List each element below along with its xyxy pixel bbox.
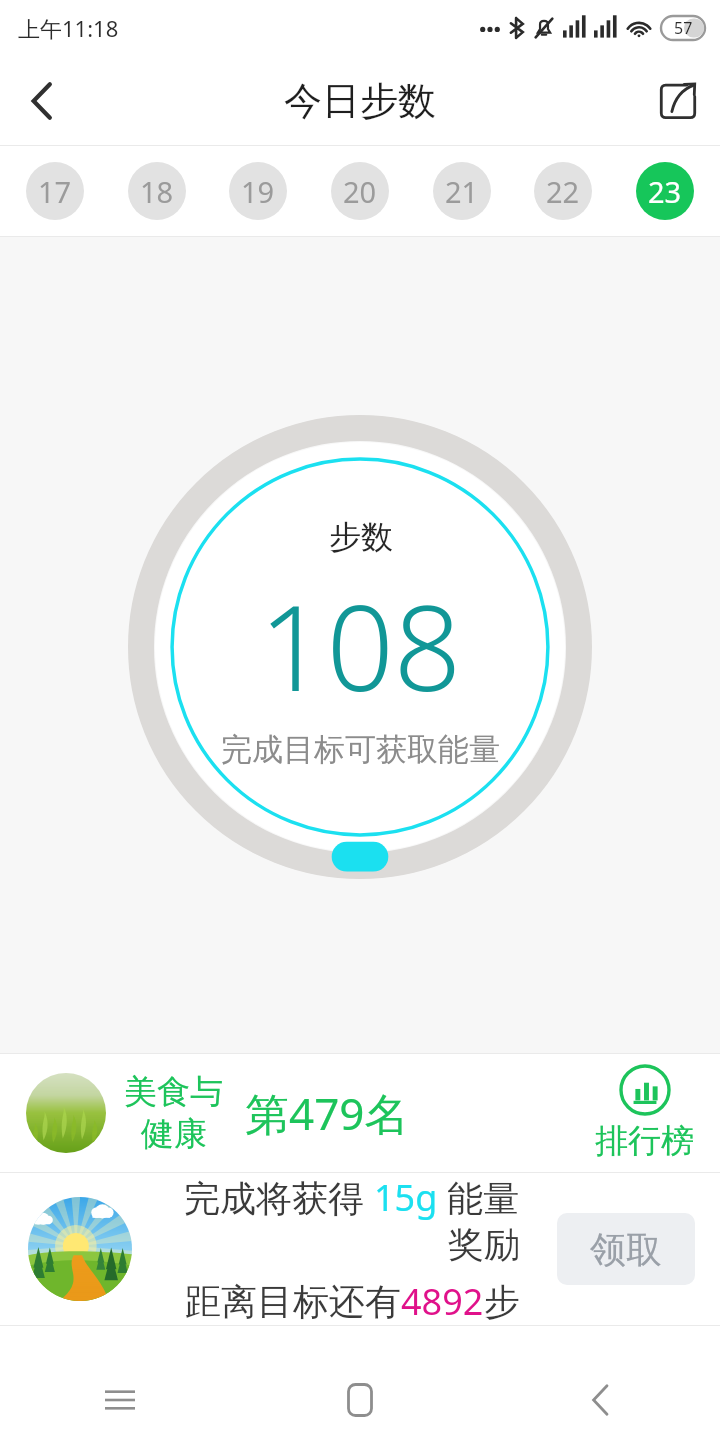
staticText: 美食与 [124, 1071, 223, 1113]
staticText: 4892 [401, 1277, 484, 1325]
staticText: 健康 [141, 1113, 207, 1155]
staticText: 20 [343, 172, 377, 211]
staticText: 第479名 [245, 1083, 409, 1143]
button[interactable]: 领取 [557, 1213, 695, 1285]
staticText: 领取 [590, 1227, 662, 1272]
button[interactable]: 22 [534, 162, 592, 220]
staticText: 能量 [438, 1173, 520, 1222]
staticText: 完成将获得 [184, 1173, 374, 1222]
staticText: 17 [38, 172, 72, 211]
staticText: 上午11:18 [18, 13, 119, 43]
button[interactable]: Back [480, 1360, 720, 1440]
staticText: 距离目标还有 [185, 1279, 401, 1324]
button[interactable]: 20 [331, 162, 389, 220]
button[interactable]: 19 [229, 162, 287, 220]
button[interactable]: 18 [128, 162, 186, 220]
staticText: 完成目标可获取能量 [221, 730, 500, 769]
staticText: 108 [259, 565, 462, 726]
staticText: 排行榜 [595, 1120, 694, 1162]
staticText: 步数 [329, 517, 393, 557]
button[interactable]: 17 [26, 162, 84, 220]
button[interactable]: Recents [0, 1360, 240, 1440]
staticText: 22 [546, 172, 580, 211]
staticText: 57 [674, 17, 693, 39]
staticText: 23 [648, 172, 682, 211]
button[interactable]: Home [240, 1360, 480, 1440]
staticText: 奖励 [448, 1222, 520, 1267]
button[interactable]: 21 [433, 162, 491, 220]
staticText: 15g [374, 1173, 438, 1222]
staticText: 步 [484, 1279, 520, 1324]
button[interactable]: Back [0, 59, 84, 143]
button[interactable]: 23 [636, 162, 694, 220]
staticText: 今日步数 [284, 77, 436, 125]
staticText: 21 [445, 172, 479, 211]
button[interactable]: 排行榜 [595, 1064, 694, 1162]
staticText: 18 [140, 172, 174, 211]
button[interactable]: Share [636, 59, 720, 143]
button[interactable]: 美食与 [0, 1054, 720, 1172]
staticText: 19 [241, 172, 275, 211]
